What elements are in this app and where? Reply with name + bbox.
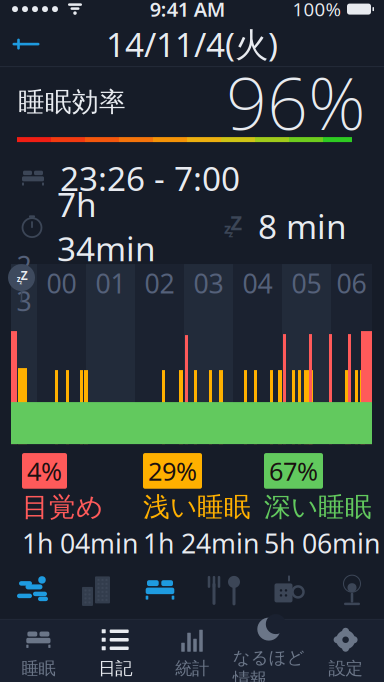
- staticText: なるほど情報: [233, 647, 305, 682]
- staticText: 睡眠: [21, 658, 55, 679]
- staticText: 5h 06min: [264, 525, 380, 561]
- staticText: 100%: [292, 0, 341, 21]
- button[interactable]: 睡眠: [0, 620, 77, 682]
- button[interactable]: Sleep: [128, 561, 192, 619]
- staticText: Z: [21, 267, 28, 283]
- button[interactable]: Meal: [192, 561, 256, 619]
- button[interactable]: 日記: [77, 620, 154, 682]
- staticText: 05: [291, 265, 321, 301]
- button[interactable]: Work: [64, 561, 128, 619]
- staticText: 1h 24min: [143, 525, 259, 561]
- staticText: 深い睡眠: [264, 491, 372, 523]
- staticText: 統計: [175, 658, 209, 679]
- button[interactable]: Alcohol: [320, 561, 384, 619]
- staticText: 目覚め: [22, 491, 103, 523]
- staticText: 01: [95, 265, 125, 301]
- staticText: 設定: [329, 658, 363, 679]
- staticText: 67%: [269, 454, 318, 488]
- staticText: 4%: [27, 454, 62, 488]
- staticText: 14/11/4(火): [106, 22, 278, 66]
- staticText: 00: [46, 265, 76, 301]
- button[interactable]: Exercise: [0, 561, 64, 619]
- button[interactable]: Back: [0, 22, 52, 66]
- staticText: 23: [16, 248, 31, 318]
- staticText: 29%: [148, 454, 197, 488]
- staticText: 04: [242, 265, 272, 301]
- button[interactable]: Caffeine: [256, 561, 320, 619]
- staticText: z: [17, 273, 21, 284]
- staticText: Z: [230, 209, 242, 236]
- staticText: z: [19, 279, 22, 286]
- staticText: 日記: [98, 658, 132, 679]
- staticText: 06: [336, 265, 366, 301]
- staticText: 1h 04min: [22, 525, 138, 561]
- button[interactable]: 統計: [154, 620, 230, 682]
- staticText: 9:41 AM: [150, 0, 226, 22]
- staticText: z: [224, 218, 231, 238]
- button[interactable]: なるほど情報: [230, 620, 307, 682]
- staticText: 23:26 - 7:00: [60, 156, 240, 200]
- staticText: 03: [193, 265, 223, 301]
- staticText: 睡眠効率: [18, 86, 126, 118]
- staticText: 浅い睡眠: [143, 491, 251, 523]
- staticText: 8 min: [258, 204, 347, 248]
- button[interactable]: 設定: [307, 620, 384, 682]
- staticText: 7h 34min: [57, 182, 156, 270]
- staticText: z: [228, 227, 233, 240]
- staticText: 96%: [226, 54, 366, 150]
- staticText: 02: [144, 265, 174, 301]
